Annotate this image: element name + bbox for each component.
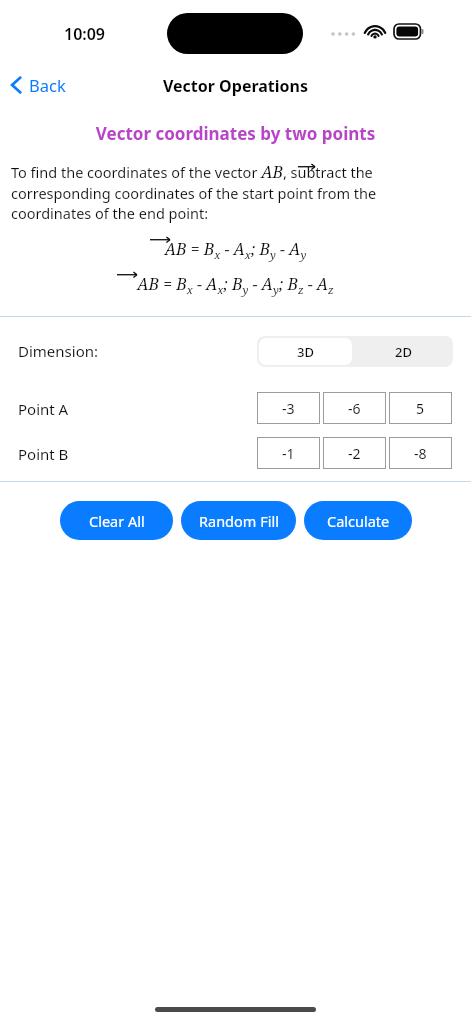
staticText: To find the coordinates of the vector AB… xyxy=(11,161,373,183)
other: Back xyxy=(10,75,23,95)
staticText: Point A xyxy=(18,399,69,419)
staticText: Point B xyxy=(18,444,69,464)
staticText: corresponding coordinates of the start p… xyxy=(11,183,377,203)
staticText: Random Fill xyxy=(199,511,279,531)
staticText: Vector Operations xyxy=(0,75,471,97)
staticText: -3 xyxy=(282,399,295,418)
staticText: Vector coordinates by two points xyxy=(0,122,471,145)
staticText: Clear All xyxy=(89,511,145,531)
button[interactable]: -3 xyxy=(257,392,320,424)
button[interactable]: Calculate xyxy=(304,501,412,540)
staticText: AB = Bx − Ax; By − Ay; Bz − Az xyxy=(0,273,471,297)
staticText: Dimension: xyxy=(18,341,98,361)
button[interactable]: Back xyxy=(10,71,66,99)
staticText: 2D xyxy=(395,343,412,361)
staticText: -2 xyxy=(348,444,361,463)
staticText: -1 xyxy=(282,444,295,463)
button[interactable]: -6 xyxy=(323,392,386,424)
button[interactable]: 3D xyxy=(259,338,352,365)
staticText: Calculate xyxy=(327,511,390,531)
button[interactable]: Clear All xyxy=(60,501,173,540)
staticText: -8 xyxy=(414,444,427,463)
button[interactable]: Random Fill xyxy=(181,501,296,540)
staticText: AB = Bx − Ax; By − Ay xyxy=(0,238,471,262)
staticText: -6 xyxy=(348,399,361,418)
staticText: Back xyxy=(29,74,66,96)
button[interactable]: 2D xyxy=(354,336,453,367)
button[interactable]: 5 xyxy=(389,392,452,424)
button[interactable]: -2 xyxy=(323,437,386,469)
button[interactable]: -8 xyxy=(389,437,452,469)
staticText: coordinates of the end point: xyxy=(11,203,209,223)
staticText: 5 xyxy=(416,399,425,418)
button[interactable]: -1 xyxy=(257,437,320,469)
staticText: 3D xyxy=(297,343,314,361)
staticText: 10:09 xyxy=(64,23,106,45)
